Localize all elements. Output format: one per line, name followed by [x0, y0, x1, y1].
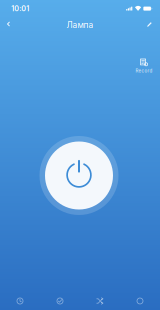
button[interactable]: Edit	[143, 15, 160, 35]
staticText: Лампа	[66, 20, 93, 30]
button[interactable]: Timer	[0, 288, 40, 310]
button[interactable]: Record	[133, 57, 155, 75]
button[interactable]: Scenes	[80, 288, 120, 310]
button[interactable]: Status	[40, 288, 80, 310]
button[interactable]: Back	[0, 15, 17, 35]
button[interactable]: Sync	[120, 288, 160, 310]
staticText: 10:01	[11, 4, 29, 13]
staticText: Record	[135, 68, 152, 73]
button[interactable]: Power	[38, 134, 120, 216]
